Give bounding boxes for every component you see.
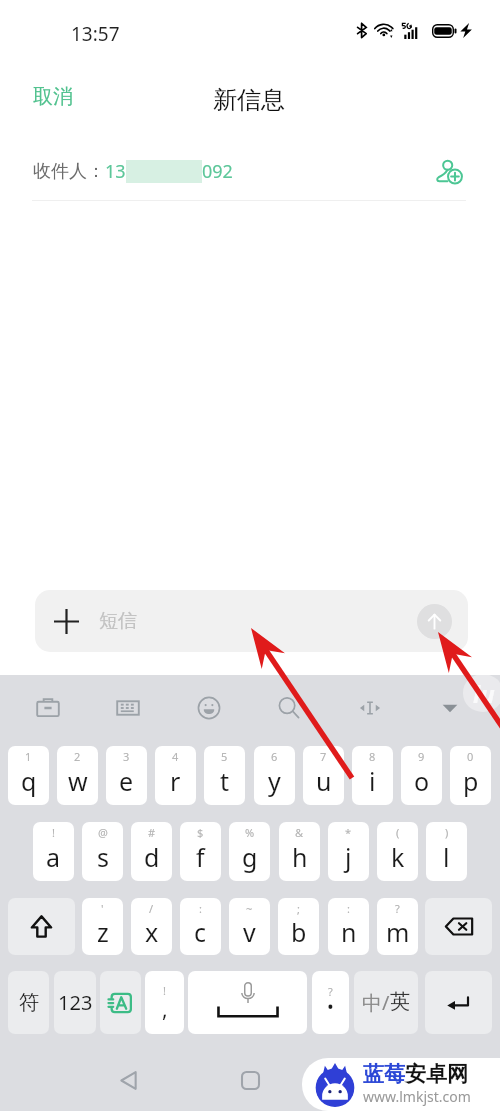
button[interactable]: Clipboard bbox=[22, 682, 74, 734]
button[interactable]: Add attachment bbox=[35, 590, 468, 652]
staticText: # bbox=[148, 825, 156, 840]
button[interactable]: Space bbox=[188, 971, 307, 1034]
staticText: 13 bbox=[105, 159, 126, 184]
staticText: & bbox=[295, 825, 304, 840]
button[interactable]: 中/ bbox=[354, 971, 418, 1034]
button[interactable]: ? bbox=[377, 898, 418, 955]
staticText: www.lmkjst.com bbox=[363, 1087, 471, 1106]
button[interactable]: ; bbox=[278, 898, 319, 955]
staticText: r bbox=[170, 764, 181, 798]
staticText: v bbox=[243, 915, 256, 949]
staticText: g bbox=[242, 840, 258, 874]
button[interactable]: / bbox=[131, 898, 172, 955]
button[interactable]: % bbox=[229, 822, 270, 881]
staticText: z bbox=[97, 915, 109, 949]
staticText: ' bbox=[101, 901, 104, 916]
button[interactable]: & bbox=[279, 822, 320, 881]
button[interactable]: 3 bbox=[106, 746, 147, 805]
staticText: b bbox=[291, 915, 307, 949]
button[interactable]: Home bbox=[230, 1060, 270, 1100]
staticText: lu bbox=[473, 677, 495, 710]
staticText: w bbox=[68, 764, 88, 798]
button[interactable]: $ bbox=[180, 822, 221, 881]
button[interactable]: Add contact bbox=[431, 154, 467, 190]
staticText: 9 bbox=[418, 749, 425, 764]
button[interactable]: : bbox=[328, 898, 369, 955]
button[interactable]: Keyboard layout bbox=[102, 682, 154, 734]
staticText: 13:57 bbox=[71, 21, 120, 47]
button[interactable]: ( bbox=[377, 822, 418, 881]
staticText: 安卓网 bbox=[405, 1061, 468, 1087]
button[interactable]: Enter bbox=[425, 971, 492, 1034]
button[interactable]: 8 bbox=[352, 746, 393, 805]
staticText: s bbox=[97, 840, 109, 874]
staticText: ! bbox=[52, 825, 55, 840]
button[interactable]: ~ bbox=[229, 898, 270, 955]
button[interactable]: 取消 bbox=[15, 75, 91, 118]
staticText: d bbox=[144, 840, 160, 874]
button[interactable]: 4 bbox=[155, 746, 196, 805]
staticText: % bbox=[245, 825, 255, 840]
staticText: : bbox=[199, 901, 202, 916]
button[interactable]: Emoji bbox=[183, 682, 235, 734]
staticText: ; bbox=[297, 901, 300, 916]
staticText: 4 bbox=[172, 749, 179, 764]
staticText: $ bbox=[197, 825, 204, 840]
staticText: a bbox=[46, 840, 61, 874]
staticText: @ bbox=[98, 825, 108, 840]
button[interactable]: 7 bbox=[303, 746, 344, 805]
button[interactable]: Back bbox=[108, 1060, 148, 1100]
button[interactable]: 6 bbox=[254, 746, 295, 805]
button[interactable]: ! bbox=[33, 822, 74, 881]
button[interactable]: 9 bbox=[401, 746, 442, 805]
button[interactable]: ) bbox=[426, 822, 467, 881]
button[interactable]: Hide keyboard bbox=[424, 682, 476, 734]
button[interactable]: 2 bbox=[57, 746, 98, 805]
staticText: h bbox=[292, 840, 308, 874]
staticText: , bbox=[162, 995, 168, 1024]
staticText: 短信 bbox=[99, 609, 137, 633]
staticText: n bbox=[341, 915, 357, 949]
button[interactable]: # bbox=[131, 822, 172, 881]
staticText: 蓝莓 bbox=[363, 1061, 405, 1087]
other: Add attachment bbox=[54, 609, 79, 634]
button[interactable]: ? bbox=[312, 971, 349, 1034]
staticText: * bbox=[345, 825, 352, 840]
staticText: 6 bbox=[271, 749, 278, 764]
staticText: i bbox=[369, 764, 376, 798]
staticText: c bbox=[194, 915, 207, 949]
staticText: ? bbox=[395, 901, 400, 916]
button[interactable]: 1 bbox=[8, 746, 49, 805]
staticText: ! bbox=[163, 983, 166, 998]
button[interactable]: * bbox=[328, 822, 369, 881]
staticText: t bbox=[220, 764, 230, 798]
button[interactable]: Search bbox=[263, 682, 315, 734]
staticText: 1 bbox=[25, 749, 32, 764]
staticText: 符 bbox=[19, 990, 39, 1015]
button[interactable]: 符 bbox=[8, 971, 49, 1034]
button[interactable]: Backspace bbox=[425, 898, 492, 955]
staticText: x bbox=[145, 915, 159, 949]
button[interactable]: Shift bbox=[8, 898, 75, 955]
button[interactable]: Language bbox=[100, 971, 141, 1034]
staticText: 取消 bbox=[33, 84, 73, 109]
staticText: 中/ bbox=[362, 989, 390, 1016]
staticText: 英 bbox=[390, 989, 410, 1014]
button[interactable]: @ bbox=[82, 822, 123, 881]
staticText: f bbox=[196, 840, 205, 874]
staticText: 7 bbox=[320, 749, 327, 764]
staticText: j bbox=[345, 840, 352, 874]
staticText: ) bbox=[445, 825, 449, 840]
button[interactable]: 5 bbox=[204, 746, 245, 805]
button[interactable]: Move cursor bbox=[344, 682, 396, 734]
button[interactable]: Send bbox=[417, 604, 452, 639]
staticText: o bbox=[414, 764, 430, 798]
button[interactable]: ! bbox=[145, 971, 184, 1034]
staticText: ? bbox=[328, 984, 333, 999]
staticText: 新信息 bbox=[213, 85, 285, 115]
button[interactable]: : bbox=[180, 898, 221, 955]
button[interactable]: ' bbox=[82, 898, 123, 955]
button[interactable]: 0 bbox=[450, 746, 491, 805]
button[interactable]: 123 bbox=[54, 971, 96, 1034]
staticText: e bbox=[119, 764, 134, 798]
